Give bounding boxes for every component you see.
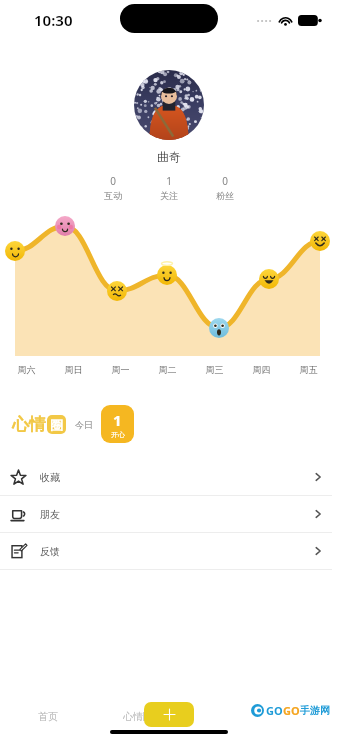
staticText: 周三 [191, 364, 238, 375]
button[interactable]: 1 [160, 174, 178, 201]
button[interactable]: 收藏 [0, 459, 338, 495]
staticText: 1 [166, 174, 172, 188]
button[interactable]: 头像 [134, 70, 204, 140]
staticText: 周一 [97, 364, 144, 375]
button[interactable]: 朋友 [0, 496, 338, 532]
staticText: 反馈 [40, 545, 60, 558]
staticText: 周二 [144, 364, 191, 375]
staticText: 互动 [104, 190, 122, 201]
staticText: 10:30 [34, 10, 73, 30]
staticText: 1 [113, 410, 122, 430]
staticText: GO [266, 703, 283, 718]
staticText: 曲奇 [157, 149, 181, 164]
staticText: 粉丝 [216, 190, 234, 201]
staticText: 周四 [238, 364, 285, 375]
staticText: 周五 [285, 364, 332, 375]
button[interactable]: 0 [104, 174, 122, 201]
button[interactable]: 新建 [144, 702, 194, 727]
staticText: 手游网 [300, 704, 330, 717]
staticText: 圈 [50, 417, 63, 433]
staticText: 周六 [3, 364, 50, 375]
staticText: 0 [110, 174, 116, 188]
staticText: 今日 [75, 419, 93, 430]
button[interactable]: 0 [216, 174, 234, 201]
button[interactable]: 1 [101, 405, 134, 443]
button[interactable]: 心情圈 [96, 704, 180, 728]
staticText: 首页 [38, 710, 58, 723]
staticText: 朋友 [40, 508, 60, 521]
staticText: 心情 [12, 414, 46, 435]
button[interactable]: 反馈 [0, 533, 338, 569]
button[interactable]: 心情 [12, 414, 66, 435]
button[interactable]: 首页 [0, 704, 96, 728]
staticText: 周日 [50, 364, 97, 375]
staticText: GO [283, 703, 300, 718]
staticText: 0 [222, 174, 228, 188]
staticText: 收藏 [40, 471, 60, 484]
staticText: 心情圈 [123, 710, 153, 723]
staticText: 关注 [160, 190, 178, 201]
staticText: 开心 [111, 430, 125, 439]
